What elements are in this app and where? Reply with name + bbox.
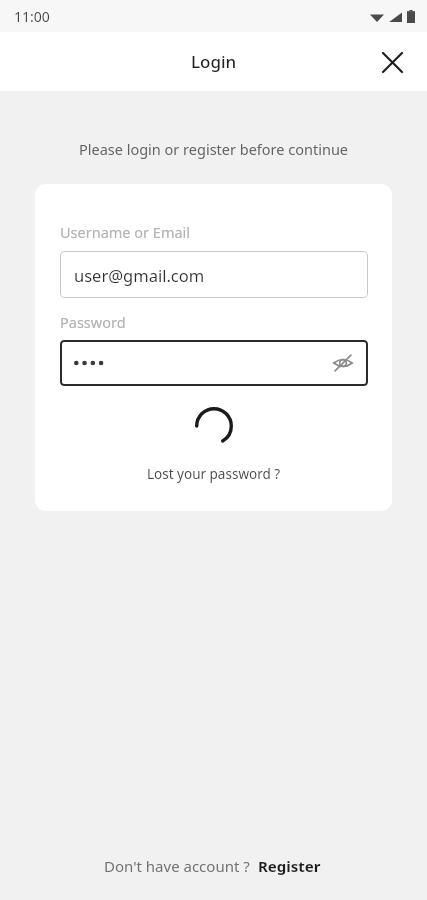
button[interactable]: Lost your password ? — [141, 462, 287, 486]
staticText: Login — [191, 50, 237, 73]
button[interactable]: Show password — [60, 340, 368, 386]
staticText: 11:00 — [14, 7, 50, 26]
button[interactable]: Show password — [328, 348, 358, 378]
button[interactable]: user@gmail.com — [60, 251, 368, 298]
button[interactable]: Close — [375, 45, 409, 79]
staticText: Don't have account ? — [104, 856, 250, 876]
button[interactable]: Register — [256, 854, 323, 878]
staticText: Lost your password ? — [147, 465, 281, 483]
staticText: Register — [258, 856, 321, 876]
staticText: user@gmail.com — [74, 264, 205, 286]
staticText: Username or Email — [60, 222, 191, 242]
staticText: Please login or register before continue — [0, 139, 427, 159]
staticText: Password — [60, 312, 126, 332]
